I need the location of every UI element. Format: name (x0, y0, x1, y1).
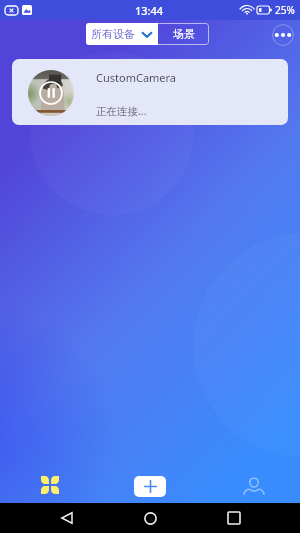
button[interactable]: Add device (134, 476, 166, 497)
button[interactable]: More options (272, 24, 294, 46)
staticText: CustomCamera (96, 70, 177, 85)
staticText: 场景 (173, 27, 195, 41)
button[interactable]: Back (53, 508, 79, 528)
staticText: 25% (275, 3, 295, 17)
staticText: 正在连接... (96, 104, 147, 118)
button[interactable]: CustomCamera (12, 59, 288, 125)
button[interactable]: 所有设备 (86, 23, 158, 45)
button[interactable]: Recent apps (221, 508, 247, 528)
button[interactable]: Devices (36, 471, 64, 499)
staticText: 13:44 (135, 3, 164, 18)
button[interactable]: Home (137, 508, 163, 528)
staticText: 所有设备 (91, 27, 135, 41)
button[interactable]: Profile (240, 472, 268, 500)
button[interactable]: 场景 (158, 23, 209, 45)
